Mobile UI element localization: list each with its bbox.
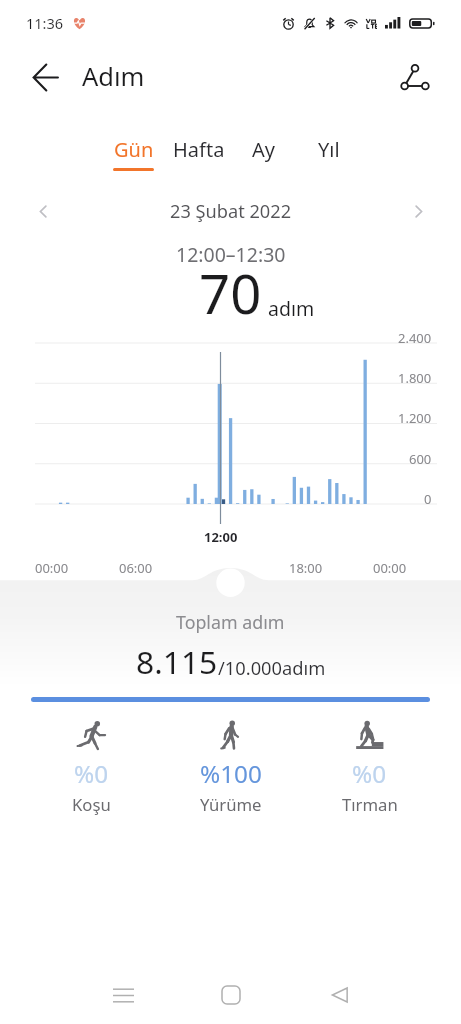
staticText: Adım bbox=[82, 59, 145, 94]
staticText: %100 bbox=[200, 757, 262, 790]
staticText: adım bbox=[268, 295, 315, 322]
staticText: 00:00 bbox=[373, 559, 407, 577]
staticText: Ay bbox=[252, 136, 275, 163]
staticText: 0 bbox=[424, 490, 432, 508]
staticText: 12:00–12:30 bbox=[176, 241, 286, 268]
staticText: Yıl bbox=[318, 136, 340, 163]
button[interactable]: Home bbox=[207, 971, 255, 1019]
staticText: 11:36 bbox=[26, 13, 64, 33]
button[interactable]: %100 bbox=[161, 720, 300, 816]
button[interactable]: Back bbox=[23, 55, 67, 99]
staticText: /10.000adım bbox=[218, 655, 326, 680]
button[interactable]: %0 bbox=[300, 720, 439, 816]
button[interactable]: Hafta bbox=[166, 136, 231, 168]
button[interactable]: Previous day bbox=[26, 194, 60, 228]
button[interactable]: Share bbox=[393, 55, 437, 99]
staticText: %0 bbox=[352, 757, 387, 790]
staticText: 18:00 bbox=[289, 559, 323, 577]
staticText: 12:00 bbox=[204, 528, 238, 546]
staticText: 8.115 bbox=[136, 640, 218, 683]
staticText: Hafta bbox=[173, 136, 225, 163]
staticText: 2.400 bbox=[398, 329, 432, 347]
staticText: 23 Şubat 2022 bbox=[170, 199, 292, 224]
staticText: %0 bbox=[74, 757, 109, 790]
button[interactable]: Next day bbox=[401, 194, 435, 228]
button[interactable]: Gün bbox=[101, 136, 166, 171]
button[interactable]: Recent apps bbox=[99, 971, 147, 1019]
button[interactable]: Back bbox=[315, 971, 363, 1019]
button[interactable]: Yıl bbox=[296, 136, 361, 168]
button[interactable]: %0 bbox=[22, 720, 161, 816]
button[interactable]: Ay bbox=[231, 136, 296, 168]
staticText: Tırman bbox=[342, 793, 398, 816]
staticText: Gün bbox=[114, 136, 154, 163]
staticText: 06:00 bbox=[119, 559, 153, 577]
staticText: Toplam adım bbox=[176, 610, 285, 634]
staticText: 600 bbox=[409, 450, 432, 468]
staticText: Koşu bbox=[72, 793, 111, 816]
staticText: 70 bbox=[199, 256, 262, 330]
staticText: 1.200 bbox=[398, 409, 432, 427]
staticText: Yürüme bbox=[200, 793, 262, 816]
staticText: 00:00 bbox=[35, 559, 69, 577]
staticText: 1.800 bbox=[398, 369, 432, 387]
